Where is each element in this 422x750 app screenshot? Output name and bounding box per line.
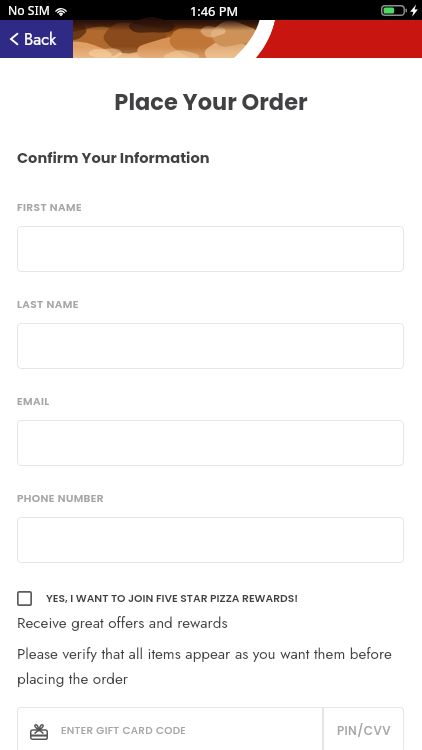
staticText: Receive great offers and rewards <box>17 612 228 634</box>
button[interactable]: PIN/CVV <box>323 707 404 750</box>
staticText: EMAIL <box>17 394 50 409</box>
button[interactable] <box>17 323 404 369</box>
staticText: No SIM <box>8 2 50 19</box>
button[interactable]: Back <box>0 20 73 58</box>
button[interactable]: YES, I WANT TO JOIN FIVE STAR PIZZA REWA… <box>0 589 422 608</box>
staticText: PHONE NUMBER <box>17 491 105 506</box>
button[interactable]: Gift card <box>17 707 323 750</box>
staticText: Place Your Order <box>0 86 422 117</box>
button[interactable] <box>17 226 404 272</box>
button[interactable] <box>17 420 404 466</box>
staticText: 1:46 PM <box>190 2 239 19</box>
staticText: YES, I WANT TO JOIN FIVE STAR PIZZA REWA… <box>46 591 298 606</box>
staticText: Back <box>24 27 57 51</box>
staticText: ENTER GIFT CARD CODE <box>61 723 187 738</box>
staticText: FIRST NAME <box>17 200 82 215</box>
staticText: Confirm Your Information <box>17 148 210 168</box>
staticText: PIN/CVV <box>337 722 391 739</box>
other: Gift card <box>30 721 48 740</box>
staticText: LAST NAME <box>17 297 79 312</box>
staticText: Please verify that all items appear as y… <box>17 643 394 690</box>
button[interactable] <box>17 517 404 563</box>
